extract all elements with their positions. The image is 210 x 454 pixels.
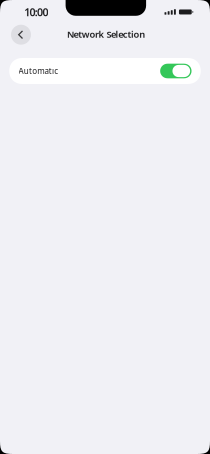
staticText: 10:00: [24, 5, 48, 19]
staticText: Network Selection: [67, 28, 145, 40]
staticText: Automatic: [19, 66, 58, 76]
button[interactable]: Back: [11, 25, 31, 45]
button[interactable]: Automatic: [9, 58, 201, 84]
